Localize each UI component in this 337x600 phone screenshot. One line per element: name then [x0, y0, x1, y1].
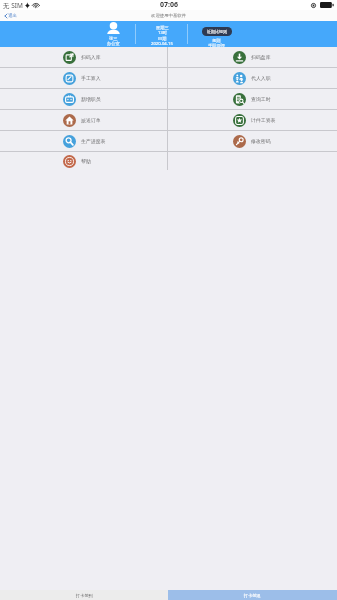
staticText: 查询工时	[251, 96, 271, 102]
staticText: 日期	[158, 36, 167, 41]
staticText: 张三	[109, 36, 118, 41]
staticText: 计件工资表	[251, 117, 276, 123]
staticText: 无 SIM	[3, 1, 23, 10]
staticText: 星期三	[156, 25, 169, 30]
staticText: 退出	[8, 13, 17, 19]
button[interactable]: 计件工资表	[168, 110, 337, 130]
staticText: 打卡签到	[76, 593, 93, 598]
staticText: 13时	[158, 30, 167, 36]
button[interactable]: 新增职员	[0, 89, 168, 109]
staticText: 修改密码	[251, 138, 271, 144]
button[interactable]: 扫码入库	[0, 47, 168, 67]
staticText: 近期比规则	[207, 29, 227, 34]
button[interactable]: 打卡签退	[168, 590, 337, 600]
staticText: 规则	[212, 38, 221, 43]
staticText: 打卡签退	[244, 593, 261, 598]
staticText: 代人入职	[251, 75, 271, 81]
staticText: 欢迎使用中基软件	[151, 13, 187, 19]
button[interactable]: 帮助	[0, 152, 168, 170]
button[interactable]: 退出	[0, 13, 21, 19]
staticText: 手职管理	[208, 43, 225, 47]
button[interactable]: 生产进度表	[0, 131, 168, 151]
staticText: 手工算入	[81, 75, 101, 81]
staticText: 扫码盘库	[251, 54, 271, 60]
button[interactable]: 派送订单	[0, 110, 168, 130]
button[interactable]: 修改密码	[168, 131, 337, 151]
button[interactable]: 查询工时	[168, 89, 337, 109]
staticText: 扫码入库	[81, 54, 101, 60]
staticText: 派送订单	[81, 117, 101, 123]
button[interactable]: 近期比规则	[202, 27, 232, 36]
staticText: 生产进度表	[81, 138, 106, 144]
staticText: 帮助	[81, 158, 91, 164]
staticText: 办公室	[107, 41, 120, 46]
button[interactable]: 手工算入	[0, 68, 168, 88]
staticText: 07:06	[160, 0, 178, 10]
button[interactable]: 代人入职	[168, 68, 337, 88]
staticText: 新增职员	[81, 96, 101, 102]
button[interactable]: 张三	[95, 21, 132, 47]
button[interactable]: 打卡签到	[0, 590, 168, 600]
staticText: 2020-04-15	[151, 41, 173, 47]
button[interactable]: 扫码盘库	[168, 47, 337, 67]
